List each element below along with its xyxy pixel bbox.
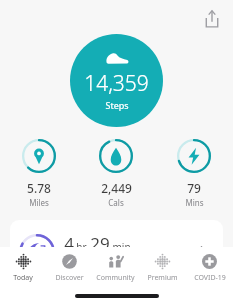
button[interactable]: 2,449 [77, 139, 155, 208]
staticText: hr [76, 240, 87, 254]
button[interactable]: Premium [139, 253, 186, 283]
staticText: Mins [185, 197, 204, 208]
button[interactable]: COVID-19 [186, 253, 233, 283]
staticText: 14,359 [84, 69, 149, 98]
staticText: 4 [64, 232, 74, 255]
staticText: Today [13, 273, 33, 283]
button[interactable] [10, 291, 223, 307]
staticText: 69 Sleep Score [73, 259, 135, 271]
button[interactable]: Add [188, 239, 214, 265]
button[interactable]: 79 [155, 139, 233, 208]
staticText: Community [96, 273, 135, 283]
staticText: Premium [147, 273, 178, 283]
staticText: min [112, 240, 131, 254]
button[interactable]: 4 [10, 220, 223, 283]
staticText: Discover [55, 273, 84, 283]
staticText: 2,449 [101, 180, 132, 196]
button[interactable]: Today [0, 253, 46, 283]
button[interactable]: Community [92, 253, 139, 283]
staticText: Steps [105, 99, 129, 111]
staticText: 5.78 [27, 180, 51, 196]
staticText: COVID-19 [194, 273, 226, 283]
button[interactable]: Share [201, 8, 223, 30]
button[interactable]: 14,359 [70, 34, 163, 127]
staticText: 29 [90, 232, 110, 255]
staticText: 79 [187, 180, 201, 196]
button[interactable]: 5.78 [0, 139, 77, 208]
staticText: Miles [29, 197, 49, 208]
button[interactable]: Discover [46, 253, 92, 283]
staticText: Cals [108, 197, 124, 208]
